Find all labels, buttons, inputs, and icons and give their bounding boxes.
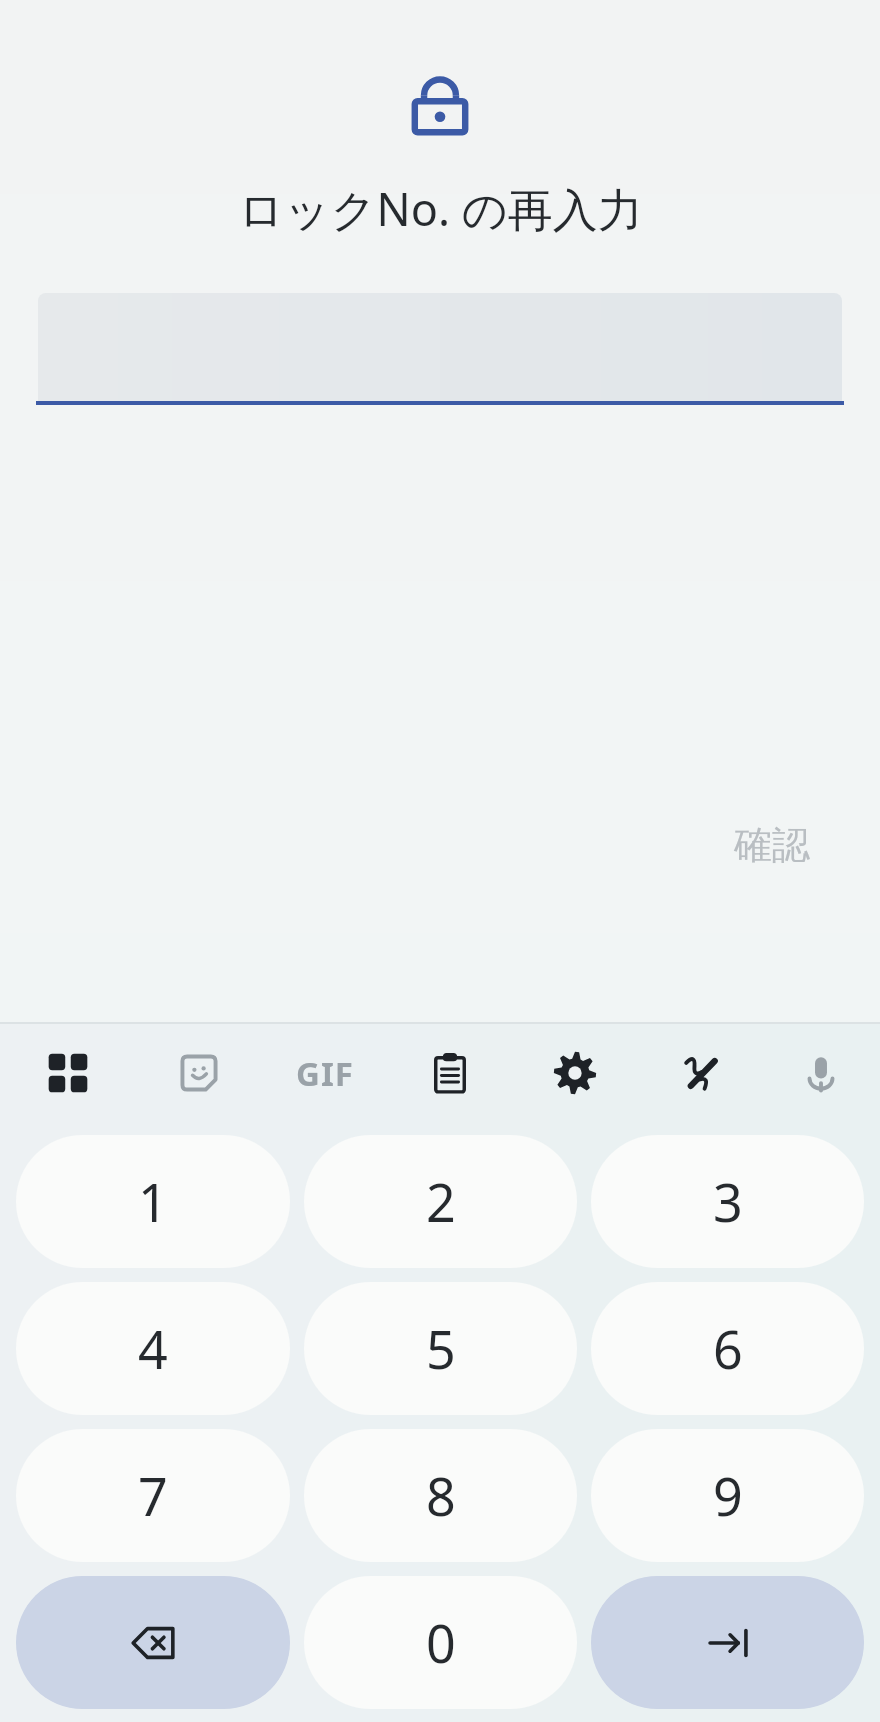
staticText: 2 [426,1166,456,1237]
staticText: 5 [426,1313,456,1384]
staticText: 8 [426,1460,456,1531]
staticText: ロックNo. の再入力 [238,178,643,239]
button[interactable]: Backspace [16,1576,290,1709]
button[interactable]: Settings [512,1024,637,1122]
button[interactable]: 9 [591,1429,864,1562]
button[interactable]: 1 [16,1135,290,1268]
button[interactable]: 確認 [734,821,810,869]
button[interactable]: 0 [304,1576,577,1709]
staticText: 1 [138,1166,168,1237]
button[interactable]: GIF [262,1024,387,1122]
button[interactable]: Handwriting [637,1024,762,1122]
staticText: 7 [138,1460,168,1531]
button[interactable]: Clipboard [387,1024,512,1122]
staticText: 6 [713,1313,743,1384]
button[interactable]: 8 [304,1429,577,1562]
staticText: 4 [138,1313,168,1384]
button[interactable]: Voice input [762,1024,880,1122]
button[interactable]: 3 [591,1135,864,1268]
staticText: 9 [713,1460,743,1531]
staticText: 0 [426,1607,456,1678]
button[interactable]: 7 [16,1429,290,1562]
staticText: 3 [713,1166,743,1237]
button[interactable]: 6 [591,1282,864,1415]
staticText: GIF [296,1051,354,1096]
button[interactable]: Stickers [136,1024,262,1122]
button[interactable]: More keyboard options [0,1024,136,1122]
button[interactable]: 2 [304,1135,577,1268]
button[interactable]: Next field [591,1576,864,1709]
button[interactable]: 5 [304,1282,577,1415]
button[interactable]: 4 [16,1282,290,1415]
